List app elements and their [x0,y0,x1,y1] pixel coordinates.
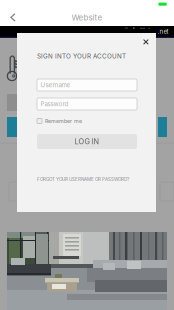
button[interactable]: Remember me [37,117,82,125]
button[interactable]: FORGOT YOUR USERNAME OR PASSWORD? [37,176,129,182]
staticText: .net [157,28,168,35]
staticText: LOG IN [74,137,99,146]
staticText: Username [40,81,70,89]
staticText: Password [40,100,68,108]
staticText: Remember me [45,118,82,124]
staticText: FORGOT YOUR USERNAME OR PASSWORD? [37,176,129,182]
button[interactable]: Close [139,35,153,49]
button[interactable]: LOG IN [37,134,137,149]
staticText: Website [71,13,102,22]
button[interactable]: Back [0,9,26,26]
staticText: SIGN INTO YOUR ACCOUNT [37,52,126,60]
